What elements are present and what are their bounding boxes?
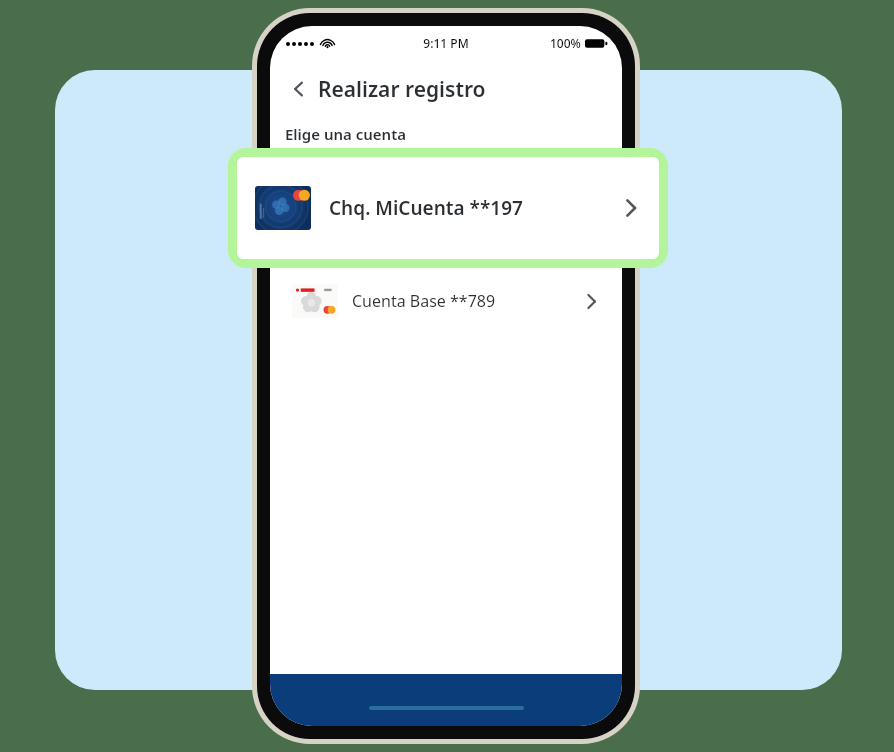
button[interactable]: Cuenta Base **789 (270, 272, 622, 330)
staticText: 9:11 PM (423, 35, 469, 51)
staticText: 100% (550, 35, 581, 51)
staticText: Realizar registro (318, 75, 486, 104)
staticText: Chq. MiCuenta **197 (329, 195, 523, 221)
staticText: Cuenta Base **789 (352, 290, 496, 312)
staticText: Elige una cuenta (285, 124, 407, 144)
button[interactable]: Chq. MiCuenta **197 (237, 157, 659, 259)
button[interactable]: Back (284, 74, 314, 104)
